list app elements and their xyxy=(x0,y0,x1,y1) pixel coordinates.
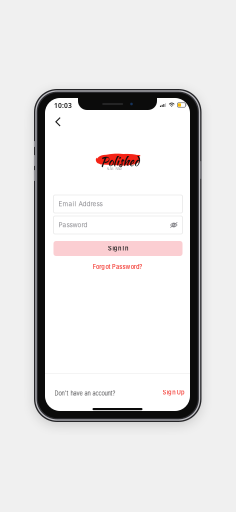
staticText: Forgot Password? xyxy=(93,264,142,270)
button[interactable]: Sign Up xyxy=(155,388,184,397)
staticText: Sign Up xyxy=(162,389,184,396)
staticText: NAIL BAR xyxy=(106,167,121,171)
staticText: Don't have an account? xyxy=(54,390,115,397)
button[interactable]: Show password xyxy=(170,222,177,228)
staticText: Polished xyxy=(100,153,139,170)
staticText: Sign In xyxy=(108,245,128,252)
staticText: Email Address xyxy=(58,200,102,208)
staticText: 10:03 xyxy=(54,101,72,110)
button[interactable]: Forgot Password? xyxy=(45,262,190,272)
button[interactable]: Sign In xyxy=(53,241,182,256)
staticText: Password xyxy=(58,221,87,229)
button[interactable]: Back xyxy=(51,114,65,130)
